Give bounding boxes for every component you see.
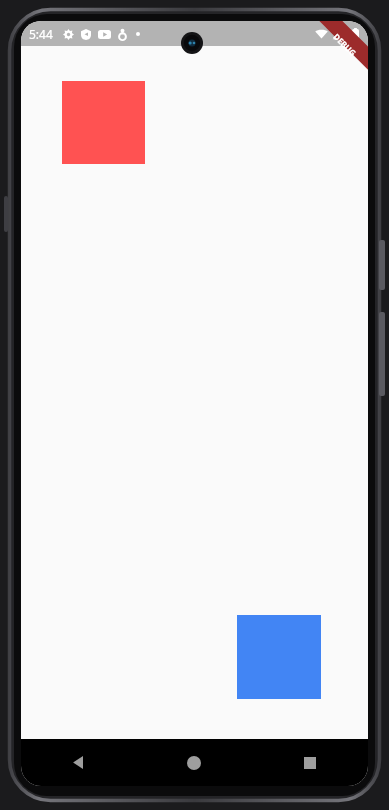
button[interactable]: Recent apps: [252, 739, 368, 786]
button[interactable]: Home: [136, 739, 252, 786]
staticText: DEBUG: [331, 31, 359, 58]
button[interactable]: Back: [21, 739, 136, 786]
staticText: 5:44: [29, 26, 53, 42]
